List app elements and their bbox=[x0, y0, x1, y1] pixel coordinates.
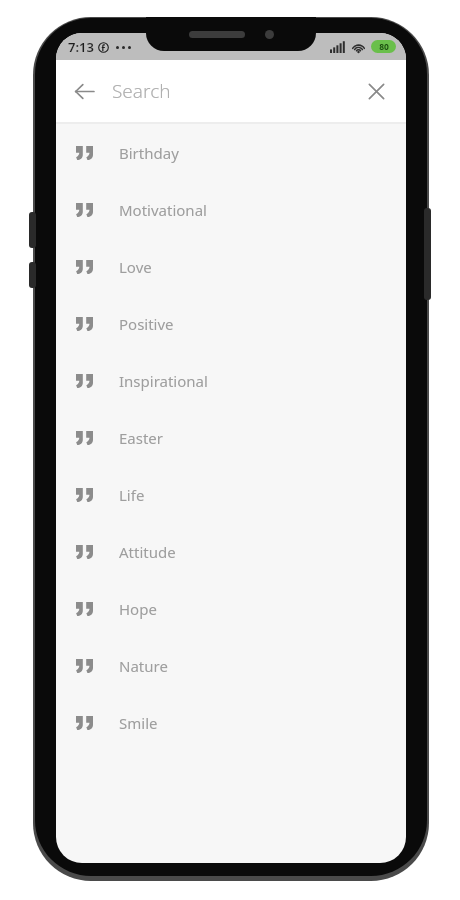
staticText: 80 bbox=[379, 41, 389, 53]
button[interactable]: Inspirational bbox=[56, 352, 406, 409]
staticText: Birthday bbox=[119, 143, 179, 163]
button[interactable]: Back bbox=[62, 69, 106, 113]
staticText: Motivational bbox=[119, 200, 207, 220]
button[interactable]: Hope bbox=[56, 580, 406, 637]
staticText: Life bbox=[119, 485, 145, 505]
button[interactable]: Search bbox=[112, 60, 354, 122]
staticText: Positive bbox=[119, 314, 174, 334]
staticText: Search bbox=[112, 78, 171, 104]
staticText: Hope bbox=[119, 599, 157, 619]
button[interactable]: Attitude bbox=[56, 523, 406, 580]
button[interactable]: Easter bbox=[56, 409, 406, 466]
staticText: Easter bbox=[119, 428, 164, 448]
button[interactable]: Clear search bbox=[354, 69, 398, 113]
button[interactable]: Motivational bbox=[56, 181, 406, 238]
staticText: Nature bbox=[119, 656, 168, 676]
button[interactable]: Life bbox=[56, 466, 406, 523]
staticText: Smile bbox=[119, 713, 158, 733]
button[interactable]: Birthday bbox=[56, 124, 406, 181]
staticText: Attitude bbox=[119, 542, 176, 562]
staticText: Love bbox=[119, 257, 152, 277]
button[interactable]: Smile bbox=[56, 694, 406, 751]
staticText: 7:13 bbox=[68, 38, 94, 56]
staticText: Inspirational bbox=[119, 371, 208, 391]
button[interactable]: Nature bbox=[56, 637, 406, 694]
button[interactable]: Love bbox=[56, 238, 406, 295]
button[interactable]: Positive bbox=[56, 295, 406, 352]
